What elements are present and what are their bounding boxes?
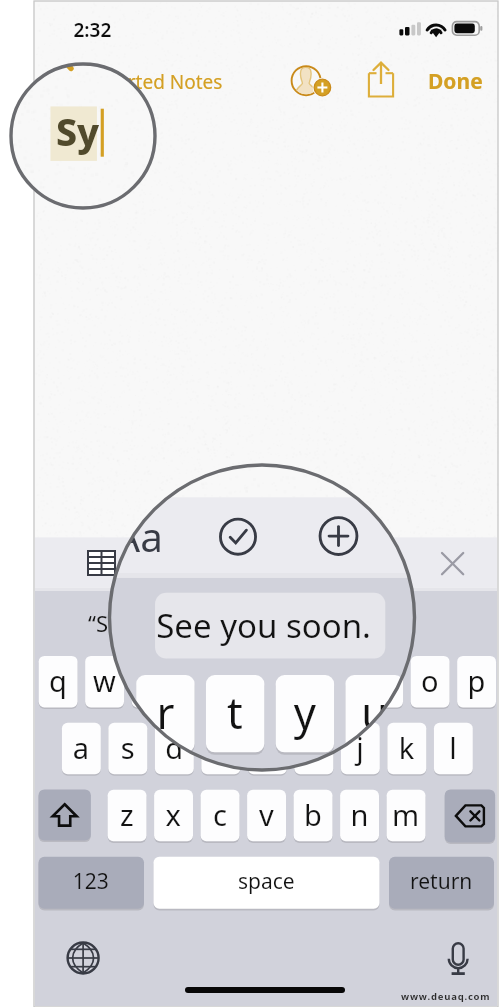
button[interactable] — [0, 0, 500, 1007]
